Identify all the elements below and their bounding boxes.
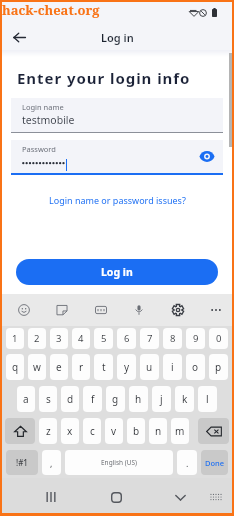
staticText: 2: [34, 332, 40, 345]
button[interactable]: m: [171, 418, 189, 444]
button[interactable]: ,: [42, 450, 61, 475]
button[interactable]: Backspace: [198, 418, 229, 444]
staticText: g: [112, 392, 119, 406]
staticText: t: [102, 360, 106, 374]
button[interactable]: Keyboard settings: [166, 298, 190, 322]
button[interactable]: More options: [204, 298, 228, 322]
button[interactable]: 8: [163, 328, 182, 349]
staticText: !#1: [16, 457, 28, 468]
button[interactable]: .: [177, 450, 197, 475]
staticText: p: [215, 360, 222, 374]
button[interactable]: v: [105, 418, 123, 444]
staticText: m: [175, 424, 185, 438]
staticText: ,: [50, 457, 53, 469]
staticText: q: [12, 360, 19, 374]
button[interactable]: l: [198, 386, 217, 412]
button[interactable]: 1: [6, 328, 24, 349]
staticText: f: [91, 392, 95, 406]
button[interactable]: q: [6, 354, 24, 380]
staticText: x: [67, 424, 73, 438]
button[interactable]: j: [152, 386, 171, 412]
staticText: Password: [22, 144, 56, 154]
button[interactable]: w: [28, 354, 46, 380]
staticText: b: [133, 424, 140, 438]
button[interactable]: 4: [72, 328, 90, 349]
staticText: 9: [193, 332, 199, 345]
button[interactable]: Recents: [37, 483, 65, 511]
staticText: c: [90, 424, 95, 438]
staticText: h: [135, 392, 142, 406]
staticText: l: [206, 392, 209, 406]
button[interactable]: 3: [50, 328, 68, 349]
button[interactable]: 2: [28, 328, 46, 349]
staticText: Log in: [101, 265, 133, 279]
button[interactable]: Symbols: [6, 450, 38, 475]
staticText: testmobile: [22, 113, 75, 127]
staticText: v: [111, 424, 117, 438]
button[interactable]: o: [186, 354, 205, 380]
button[interactable]: 5: [94, 328, 113, 349]
button[interactable]: e: [50, 354, 68, 380]
button[interactable]: 0: [209, 328, 228, 349]
button[interactable]: 7: [140, 328, 159, 349]
staticText: English (US): [101, 458, 138, 467]
button[interactable]: Emoji: [12, 298, 36, 322]
staticText: 5: [101, 332, 107, 345]
staticText: w: [33, 360, 41, 374]
staticText: o: [192, 360, 199, 374]
button[interactable]: a: [17, 386, 35, 412]
staticText: z: [46, 424, 51, 438]
button[interactable]: p: [209, 354, 228, 380]
staticText: 7: [147, 332, 153, 345]
staticText: d: [67, 392, 74, 406]
staticText: e: [56, 360, 62, 374]
button[interactable]: y: [117, 354, 136, 380]
button[interactable]: x: [61, 418, 79, 444]
button[interactable]: s: [39, 386, 57, 412]
button[interactable]: g: [106, 386, 125, 412]
button[interactable]: GIF: [89, 298, 113, 322]
button[interactable]: Stickers: [50, 298, 74, 322]
staticText: r: [79, 360, 84, 374]
button[interactable]: Home: [102, 483, 130, 511]
button[interactable]: Switch keyboard: [202, 483, 230, 511]
button[interactable]: Shift: [5, 418, 35, 444]
staticText: 0: [216, 332, 222, 345]
staticText: y: [124, 360, 130, 374]
button[interactable]: i: [163, 354, 182, 380]
staticText: u: [146, 360, 153, 374]
staticText: 3: [56, 332, 62, 345]
staticText: s: [46, 392, 51, 406]
staticText: i: [171, 360, 174, 374]
button[interactable]: d: [61, 386, 79, 412]
staticText: 8: [170, 332, 176, 345]
staticText: k: [182, 392, 188, 406]
button[interactable]: Log in: [16, 259, 218, 285]
staticText: Log in: [101, 30, 134, 45]
button[interactable]: c: [83, 418, 101, 444]
staticText: .: [186, 457, 189, 469]
button[interactable]: u: [140, 354, 159, 380]
button[interactable]: Back: [8, 26, 30, 48]
button[interactable]: English (US): [65, 450, 173, 475]
button[interactable]: f: [83, 386, 102, 412]
button[interactable]: Done: [201, 450, 228, 475]
button[interactable]: Login name or password issues?: [45, 192, 190, 208]
button[interactable]: Voice input: [127, 298, 151, 322]
button[interactable]: z: [39, 418, 57, 444]
button[interactable]: 6: [117, 328, 136, 349]
staticText: Login name: [22, 102, 64, 112]
button[interactable]: t: [94, 354, 113, 380]
button[interactable]: k: [175, 386, 194, 412]
staticText: a: [23, 392, 29, 406]
button[interactable]: Show password: [198, 147, 216, 165]
button[interactable]: 9: [186, 328, 205, 349]
staticText: j: [160, 392, 163, 406]
button[interactable]: b: [127, 418, 145, 444]
button[interactable]: n: [149, 418, 167, 444]
staticText: 6: [124, 332, 130, 345]
button[interactable]: h: [129, 386, 148, 412]
button[interactable]: r: [72, 354, 90, 380]
button[interactable]: Hide keyboard: [166, 483, 194, 511]
staticText: Done: [205, 458, 225, 468]
